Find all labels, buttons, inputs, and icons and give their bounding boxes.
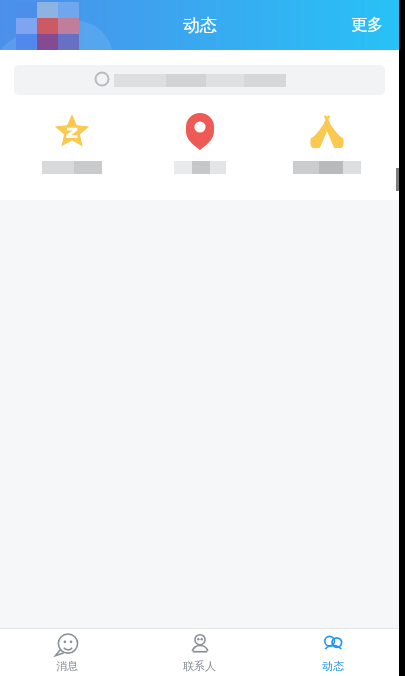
button[interactable]: 消息 [0, 629, 133, 676]
button[interactable]: 联系人 [133, 629, 266, 676]
staticText: 动态 [322, 659, 344, 673]
button[interactable]: Shortcut 1 [17, 109, 127, 174]
button[interactable]: Shortcut 3 [272, 109, 382, 174]
staticText: 联系人 [183, 659, 216, 673]
button[interactable] [14, 65, 385, 95]
staticText: 消息 [56, 659, 78, 673]
staticText: 更多 [351, 15, 383, 35]
button[interactable]: Shortcut 2 [145, 109, 255, 174]
button[interactable]: 动态 [266, 629, 399, 676]
staticText: 动态 [183, 15, 217, 36]
button[interactable]: 更多 [335, 15, 399, 35]
